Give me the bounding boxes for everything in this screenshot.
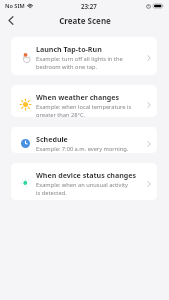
staticText: Example: 7:00 a.m. every morning. xyxy=(36,145,129,153)
staticText: Example: turn off all lights in the bedr… xyxy=(36,55,123,70)
staticText: 23:27 xyxy=(81,2,97,10)
staticText: Schedule xyxy=(36,134,68,144)
staticText: Example: when an unusual activity is det… xyxy=(36,181,128,196)
staticText: Create Scene xyxy=(59,15,111,26)
button[interactable]: Launch Tap-to-Run xyxy=(11,37,157,75)
button[interactable]: Schedule xyxy=(11,127,157,153)
button[interactable]: When weather changes xyxy=(11,85,157,117)
staticText: Launch Tap-to-Run xyxy=(36,44,102,54)
staticText: Example: when local temperature is great… xyxy=(36,103,132,117)
staticText: When device status changes xyxy=(36,170,137,180)
staticText: No SIM xyxy=(5,2,25,10)
button[interactable]: Back xyxy=(0,12,22,28)
staticText: When weather changes xyxy=(36,92,120,102)
button[interactable]: When device status changes xyxy=(11,163,157,200)
